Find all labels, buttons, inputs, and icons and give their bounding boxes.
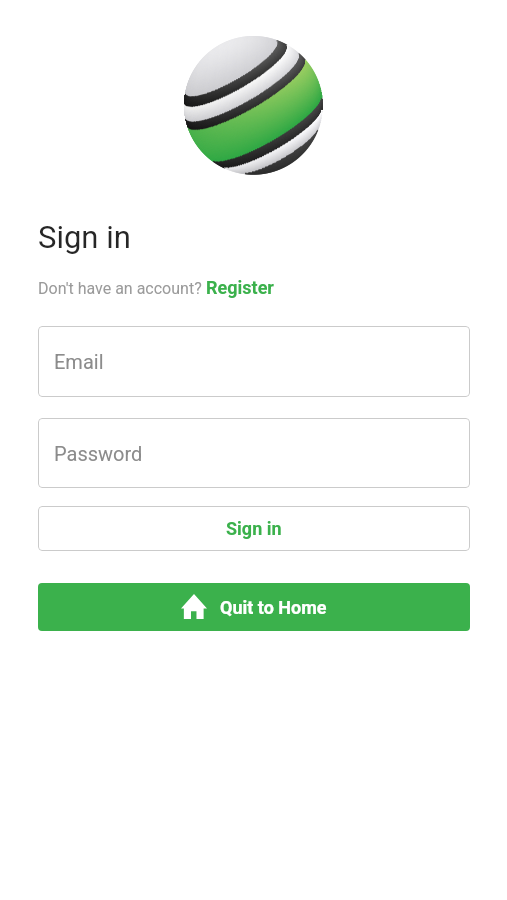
staticText: Password — [54, 442, 143, 465]
staticText: Sign in — [38, 219, 131, 255]
button[interactable]: Register — [206, 277, 274, 298]
button[interactable]: Email — [38, 326, 470, 397]
staticText: Quit to Home — [220, 597, 327, 618]
button[interactable]: Quit to Home — [38, 583, 470, 631]
staticText: Email — [54, 350, 104, 373]
button[interactable]: Sign in — [38, 506, 470, 551]
staticText: Don't have an account? — [38, 279, 206, 298]
button[interactable]: Password — [38, 418, 470, 488]
staticText: Sign in — [226, 518, 282, 539]
